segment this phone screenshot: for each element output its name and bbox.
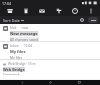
staticText: · [19, 26, 20, 30]
staticText: Sort: Date [3, 18, 20, 23]
button[interactable]: Mark unread [35, 6, 48, 16]
staticText: All changes saved [10, 37, 39, 41]
staticText: Inbox [10, 44, 19, 48]
button[interactable]: Snooze [68, 6, 81, 16]
staticText: My files [10, 55, 23, 59]
button[interactable]: Back [15, 80, 29, 85]
staticText: Connected [3, 73, 20, 75]
button[interactable]: Web Bridge · 15 m [0, 60, 100, 75]
staticText: 17:04 [2, 1, 11, 6]
button[interactable]: Account [88, 17, 98, 23]
button[interactable]: Sort: Date [2, 18, 25, 23]
staticText: My files [10, 49, 26, 54]
staticText: now [22, 26, 29, 30]
button[interactable]: Move [52, 6, 65, 16]
staticText: Mail [10, 26, 17, 30]
staticText: Web Bridge · 15 m [8, 62, 36, 66]
staticText: · [21, 44, 22, 48]
button[interactable]: Settings [78, 16, 86, 24]
button[interactable]: Delete [19, 6, 32, 16]
staticText: 12:04 [24, 44, 33, 48]
button[interactable]: Archive [3, 6, 16, 16]
button[interactable]: More options [84, 6, 97, 16]
button[interactable]: Home [43, 80, 57, 85]
staticText: New message [10, 31, 38, 36]
staticText: Web Bridge [3, 67, 25, 72]
button[interactable]: Recents [72, 80, 86, 85]
button[interactable]: Mail [0, 24, 100, 41]
button[interactable]: Inbox [0, 42, 100, 59]
